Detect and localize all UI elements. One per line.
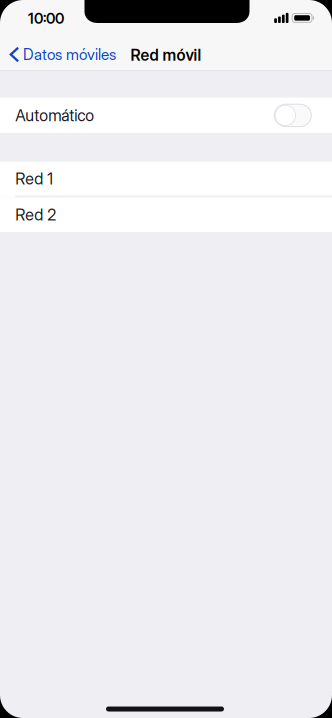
button[interactable]: Red 1 (0, 162, 332, 196)
staticText: Red 2 (15, 205, 56, 224)
button[interactable]: Automático (0, 98, 332, 133)
staticText: 10:00 (28, 10, 64, 27)
staticText: Datos móviles (23, 45, 116, 64)
button[interactable]: Datos móviles (0, 0, 124, 70)
staticText: Red móvil (130, 45, 201, 64)
staticText: Automático (15, 106, 94, 125)
button[interactable]: Red 2 (0, 198, 332, 232)
staticText: Red 1 (15, 169, 53, 188)
